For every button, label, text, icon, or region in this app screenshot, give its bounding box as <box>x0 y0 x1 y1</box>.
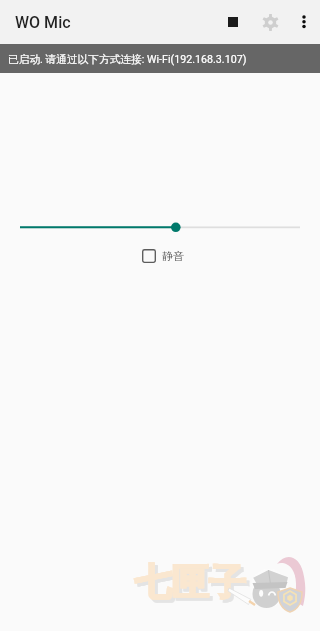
staticText: 静音 <box>162 249 184 263</box>
staticText: WO Mic <box>15 13 71 32</box>
button[interactable]: 静音 <box>142 249 184 263</box>
button[interactable]: Stop <box>212 0 254 44</box>
button[interactable]: More options <box>287 0 320 44</box>
button[interactable]: Settings <box>254 0 287 44</box>
staticText: 七匣子 <box>138 562 249 609</box>
staticText: 七匣子 <box>134 559 245 606</box>
staticText: 已启动. 请通过以下方式连接: Wi-Fi(192.168.3.107) <box>8 53 247 66</box>
staticText: 七匣子 <box>137 562 248 609</box>
staticText: 七匣子 <box>135 559 246 606</box>
